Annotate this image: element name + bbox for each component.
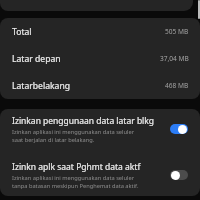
staticText: 505 MB [165,27,189,36]
staticText: Total [12,26,32,38]
staticText: 468 MB [165,81,189,90]
staticText: Izinkan penggunaan data latar blkg [12,115,162,127]
button[interactable]: Izinkan penggunaan data latar blkg [0,109,200,153]
staticText: Izinkn aplk saat Pghmt data aktf [12,161,162,173]
staticText: Izinkan aplikasi ini menggunakan data se… [12,128,144,144]
button[interactable]: Total [0,18,200,45]
staticText: Latar depan [12,53,61,65]
button[interactable]: Izinkn aplk saat Pghmt data aktf [0,153,200,196]
other: Izinkn aplk saat Pghmt data aktf [170,170,188,180]
staticText: Izinkan aplikasi ini menggunakan data se… [12,174,144,190]
staticText: 37,04 MB [160,54,189,63]
other: Izinkan penggunaan data latar blkg [170,124,188,134]
button[interactable]: Latarbelakang [0,72,200,99]
button[interactable]: Latar depan [0,45,200,72]
staticText: Latarbelakang [12,80,70,92]
